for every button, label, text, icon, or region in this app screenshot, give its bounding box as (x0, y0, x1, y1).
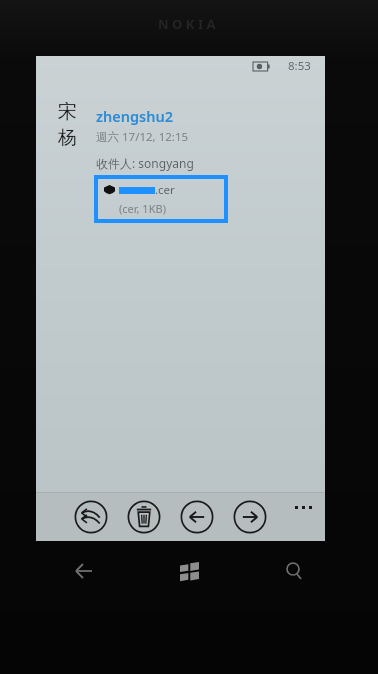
button[interactable]: Reply all (74, 500, 108, 534)
button[interactable]: Previous message (180, 500, 214, 534)
staticText: zhengshu2 (96, 106, 174, 126)
button[interactable]: Search (273, 550, 315, 592)
staticText: 宋 (58, 100, 77, 124)
staticText: NOKIA (158, 15, 220, 33)
staticText: 週六 17/12, 12:15 (96, 129, 189, 145)
staticText: (cer, 1KB) (119, 201, 166, 216)
staticText: 8:53 (288, 58, 311, 74)
staticText: 杨 (58, 126, 77, 150)
staticText: 收件人: songyang (96, 155, 194, 171)
button[interactable]: More options (289, 500, 317, 514)
staticText: .cer (155, 182, 175, 198)
button[interactable]: Next message (233, 500, 267, 534)
button[interactable]: Delete (127, 500, 161, 534)
button[interactable]: Back (63, 550, 105, 592)
button[interactable]: .cer (96, 177, 226, 221)
button[interactable]: Start (168, 550, 210, 592)
